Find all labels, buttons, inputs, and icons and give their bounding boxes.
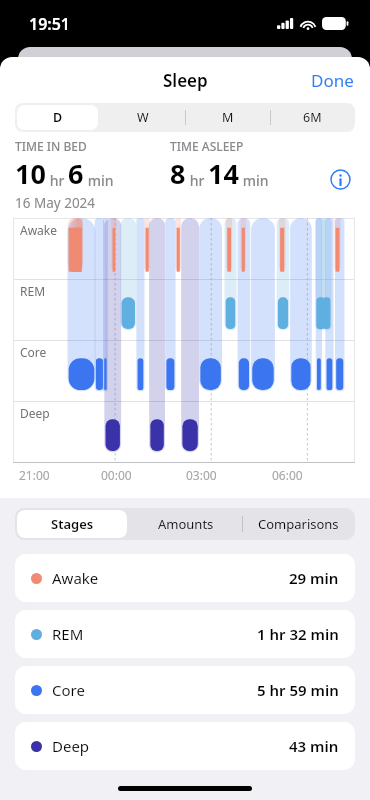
staticText: Done <box>311 69 354 92</box>
staticText: 6 <box>68 155 84 192</box>
staticText: 6M <box>303 109 322 126</box>
staticText: Core <box>52 680 85 700</box>
staticText: min <box>239 171 269 190</box>
staticText: min <box>84 171 114 190</box>
staticText: 29 min <box>289 568 339 588</box>
staticText: 14 <box>208 155 239 192</box>
staticText: 1 hr 32 min <box>257 624 339 644</box>
staticText: Stages <box>51 515 94 533</box>
staticText: hr <box>186 171 208 190</box>
staticText: 10 <box>15 155 46 192</box>
staticText: Awake <box>20 222 58 238</box>
button[interactable]: Awake <box>15 554 355 602</box>
staticText: 21:00 <box>19 467 50 483</box>
staticText: 16 May 2024 <box>15 194 96 212</box>
button[interactable]: D <box>15 103 100 132</box>
staticText: M <box>222 109 234 126</box>
staticText: Comparisons <box>258 515 339 533</box>
staticText: Deep <box>20 405 50 421</box>
button[interactable]: Done <box>295 61 370 100</box>
button[interactable]: Core <box>15 666 355 714</box>
staticText: hr <box>46 171 68 190</box>
button[interactable]: Comparisons <box>242 508 355 540</box>
staticText: 00:00 <box>101 467 132 483</box>
button[interactable]: Amounts <box>129 508 242 540</box>
button[interactable]: Stages <box>15 508 129 540</box>
staticText: REM <box>52 624 84 644</box>
staticText: TIME ASLEEP <box>170 138 244 154</box>
staticText: REM <box>20 283 46 299</box>
staticText: D <box>53 109 63 126</box>
staticText: 06:00 <box>272 467 303 483</box>
staticText: W <box>137 109 149 126</box>
button[interactable]: M <box>185 103 270 132</box>
button[interactable]: W <box>100 103 185 132</box>
staticText: 19:51 <box>29 13 71 35</box>
staticText: Awake <box>52 568 99 588</box>
button[interactable]: 6M <box>270 103 355 132</box>
staticText: 43 min <box>289 736 339 756</box>
button[interactable]: Info <box>326 165 355 194</box>
staticText: 8 <box>170 155 186 192</box>
staticText: Amounts <box>158 515 214 533</box>
button[interactable]: Deep <box>15 722 355 770</box>
staticText: Sleep <box>163 69 208 92</box>
staticText: 5 hr 59 min <box>257 680 339 700</box>
staticText: Core <box>20 344 47 360</box>
staticText: Deep <box>52 736 90 756</box>
staticText: 03:00 <box>186 467 217 483</box>
button[interactable]: REM <box>15 610 355 658</box>
staticText: TIME IN BED <box>15 138 87 154</box>
